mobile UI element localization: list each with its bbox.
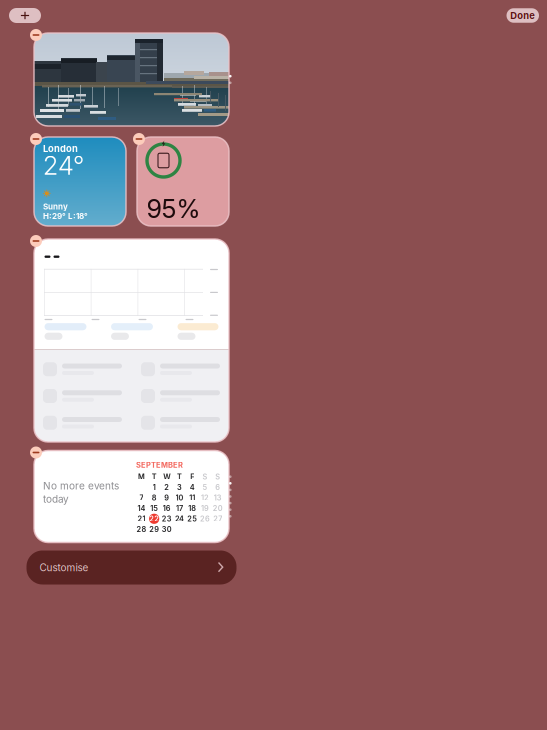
staticText: M xyxy=(138,472,145,481)
button[interactable]: Add widget xyxy=(9,8,41,23)
button[interactable]: Done xyxy=(506,8,539,23)
staticText: 17 xyxy=(176,504,183,513)
staticText: 30 xyxy=(162,525,172,534)
staticText: 8 xyxy=(152,493,157,502)
staticText: 19 xyxy=(201,504,209,513)
staticText: Sunny xyxy=(43,202,68,211)
button[interactable]: Remove widget xyxy=(30,133,42,145)
staticText: 18 xyxy=(188,504,196,513)
staticText: 13 xyxy=(214,493,222,502)
staticText: S xyxy=(215,472,220,481)
staticText: Done xyxy=(510,10,535,21)
staticText: London xyxy=(43,143,78,154)
staticText: 24 xyxy=(175,514,184,523)
staticText: H:29° L:18° xyxy=(43,211,88,221)
staticText: 28 xyxy=(136,525,146,534)
staticText: 10 xyxy=(175,493,183,502)
staticText: 4 xyxy=(190,483,195,492)
staticText: 25 xyxy=(187,514,197,523)
staticText: 1 xyxy=(153,483,156,492)
staticText: 2 xyxy=(164,483,169,492)
staticText: today xyxy=(43,493,69,505)
staticText: 20 xyxy=(213,504,223,513)
button[interactable]: Remove widget xyxy=(133,133,145,145)
button[interactable]: Widget xyxy=(34,137,126,226)
staticText: 24° xyxy=(43,150,84,181)
staticText: 14 xyxy=(137,504,145,513)
button[interactable]: Remove widget xyxy=(30,446,42,458)
staticText: 11 xyxy=(189,493,195,502)
staticText: 27 xyxy=(213,514,222,523)
staticText: 29 xyxy=(149,525,159,534)
staticText: 9 xyxy=(164,493,169,502)
staticText: T xyxy=(177,472,182,481)
staticText: 22 xyxy=(149,514,159,523)
staticText: 6 xyxy=(215,483,220,492)
staticText: S xyxy=(202,472,207,481)
button[interactable]: Widget xyxy=(34,33,229,126)
button[interactable]: Widget xyxy=(34,239,229,442)
staticText: W xyxy=(163,472,170,481)
staticText: 95% xyxy=(146,193,200,224)
staticText: 16 xyxy=(163,504,171,513)
staticText: 12 xyxy=(201,493,209,502)
button[interactable]: Widget xyxy=(34,450,229,542)
staticText: 3 xyxy=(177,483,182,492)
staticText: Customise xyxy=(39,561,88,574)
button[interactable]: Remove widget xyxy=(30,235,42,247)
staticText: SEPTEMBER xyxy=(136,460,183,469)
staticText: 26 xyxy=(200,514,210,523)
button[interactable]: Customise xyxy=(26,550,236,584)
staticText: 21 xyxy=(137,514,145,523)
staticText: 23 xyxy=(162,514,172,523)
staticText: 5 xyxy=(202,483,207,492)
staticText: 7 xyxy=(139,493,143,502)
staticText: F xyxy=(190,472,194,481)
button[interactable]: Widget xyxy=(137,137,229,226)
staticText: 15 xyxy=(150,504,158,513)
button[interactable]: Remove widget xyxy=(30,29,42,41)
staticText: T xyxy=(152,472,157,481)
staticText: No more events xyxy=(43,480,119,492)
